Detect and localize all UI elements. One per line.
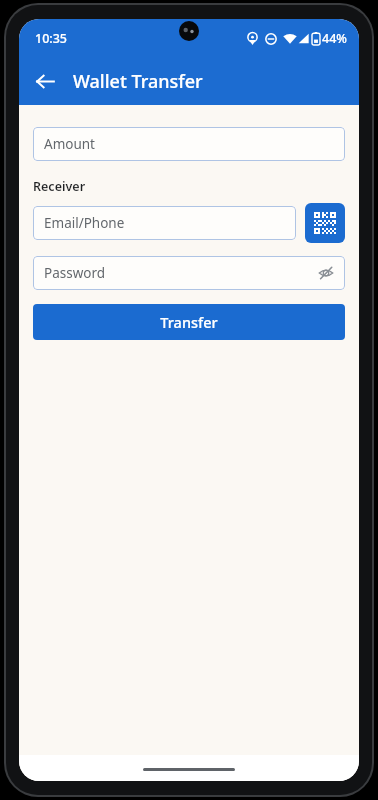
button[interactable]: Scan QR code <box>305 203 345 243</box>
staticText: Password <box>44 264 106 282</box>
staticText: Email/Phone <box>44 214 125 232</box>
staticText: Transfer <box>160 312 218 332</box>
staticText: Receiver <box>33 178 86 195</box>
staticText: Amount <box>44 135 95 153</box>
button[interactable]: Show password <box>315 262 337 284</box>
staticText: 10:35 <box>35 30 68 47</box>
button[interactable]: Transfer <box>33 304 345 340</box>
button[interactable]: Amount <box>33 127 345 161</box>
button[interactable]: Email/Phone <box>33 206 296 240</box>
button[interactable]: Back <box>25 61 65 101</box>
staticText: Wallet Transfer <box>73 69 203 94</box>
staticText: 44% <box>322 30 347 47</box>
button[interactable]: Password <box>33 256 345 290</box>
